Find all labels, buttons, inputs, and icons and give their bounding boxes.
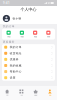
staticText: 收货地址 <box>10 52 22 55</box>
staticText: 帮助中心 <box>10 70 22 73</box>
button[interactable]: 购物车 <box>28 89 43 96</box>
staticText: 待评价 <box>47 36 50 37</box>
staticText: 待发货 <box>20 36 23 37</box>
button[interactable]: 分类 <box>14 89 28 96</box>
staticText: 首页 <box>6 94 8 96</box>
staticText: 优惠券 <box>10 58 19 61</box>
staticText: 我的订单 <box>3 25 15 28</box>
staticText: 我的收藏 <box>10 64 22 67</box>
staticText: 个人中心 <box>20 7 36 12</box>
staticText: 待收货 <box>34 36 37 37</box>
staticText: 待付款 <box>7 36 10 37</box>
staticText: 我的订单 <box>10 45 22 49</box>
button[interactable]: 首页 <box>0 89 14 96</box>
button[interactable]: 待评价 <box>42 31 55 37</box>
button[interactable]: 我的收藏 <box>2 62 55 68</box>
button[interactable]: 待付款 <box>2 31 15 37</box>
staticText: 9:41 <box>3 1 10 5</box>
staticText: 更多服务 <box>3 40 15 43</box>
button[interactable]: 帮助中心 <box>2 68 55 75</box>
staticText: 分类 <box>20 94 22 96</box>
button[interactable]: 收货地址 <box>2 50 55 56</box>
staticText: 设置 <box>10 76 16 79</box>
staticText: 购物车 <box>34 94 37 96</box>
button[interactable]: 待发货 <box>15 31 28 37</box>
button[interactable]: 优惠券 <box>2 56 55 62</box>
button[interactable]: 设置 <box>2 75 55 81</box>
staticText: 张小明 <box>12 17 21 20</box>
button[interactable]: 待收货 <box>28 31 42 37</box>
staticText: 我的 <box>49 94 51 96</box>
button[interactable]: 我的 <box>43 89 57 96</box>
button[interactable]: 张小明 <box>0 13 57 24</box>
button[interactable]: 我的订单 <box>2 44 55 50</box>
